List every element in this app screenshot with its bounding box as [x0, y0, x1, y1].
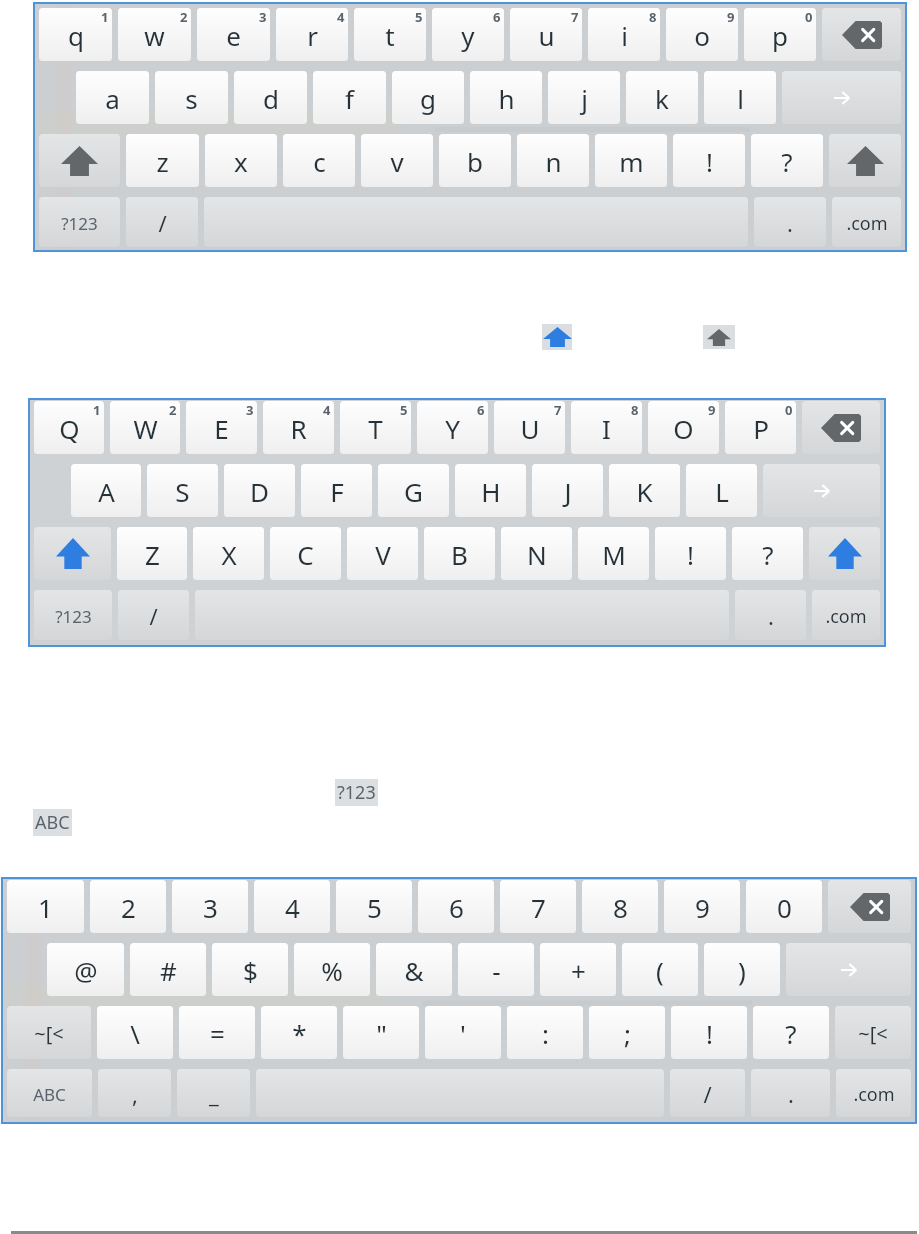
- button[interactable]: W: [110, 401, 180, 454]
- button[interactable]: m: [595, 134, 667, 187]
- button[interactable]: O: [648, 401, 719, 454]
- button[interactable]: E: [186, 401, 257, 454]
- button[interactable]: #: [130, 943, 206, 996]
- button[interactable]: h: [470, 71, 542, 124]
- button[interactable]: M: [578, 527, 649, 580]
- button[interactable]: T: [340, 401, 411, 454]
- button[interactable]: C: [270, 527, 341, 580]
- button[interactable]: D: [224, 464, 295, 517]
- button[interactable]: ~[<: [835, 1006, 911, 1059]
- button[interactable]: R: [263, 401, 334, 454]
- button[interactable]: l: [704, 71, 776, 124]
- button[interactable]: ?123: [39, 197, 120, 247]
- button[interactable]: .: [754, 197, 826, 247]
- button[interactable]: -: [458, 943, 534, 996]
- button[interactable]: ": [343, 1006, 419, 1059]
- button[interactable]: U: [494, 401, 565, 454]
- button[interactable]: y: [432, 8, 504, 61]
- button[interactable]: V: [347, 527, 418, 580]
- button[interactable]: ?: [751, 134, 823, 187]
- button[interactable]: x: [205, 134, 277, 187]
- button[interactable]: e: [197, 8, 270, 61]
- button[interactable]: ): [704, 943, 780, 996]
- button[interactable]: L: [686, 464, 757, 517]
- button[interactable]: .com: [836, 1069, 911, 1117]
- button[interactable]: Shift enabled: [542, 324, 572, 350]
- button[interactable]: 5: [336, 880, 412, 933]
- button[interactable]: K: [609, 464, 680, 517]
- button[interactable]: ABC: [7, 1069, 92, 1117]
- button[interactable]: j: [548, 71, 620, 124]
- button[interactable]: 6: [418, 880, 494, 933]
- button[interactable]: r: [276, 8, 348, 61]
- button[interactable]: 0: [746, 880, 822, 933]
- button[interactable]: d: [234, 71, 307, 124]
- button[interactable]: 1: [7, 880, 84, 933]
- button[interactable]: ?: [753, 1006, 829, 1059]
- button[interactable]: Shift: [39, 134, 120, 187]
- button[interactable]: G: [378, 464, 449, 517]
- button[interactable]: /: [670, 1069, 745, 1117]
- button[interactable]: Enter: [782, 71, 901, 124]
- button[interactable]: *: [261, 1006, 337, 1059]
- button[interactable]: ?: [732, 527, 803, 580]
- button[interactable]: 2: [90, 880, 166, 933]
- button[interactable]: Backspace: [822, 8, 901, 61]
- button[interactable]: 7: [500, 880, 576, 933]
- button[interactable]: @: [47, 943, 124, 996]
- button[interactable]: ?123: [34, 590, 112, 640]
- button[interactable]: Space: [256, 1069, 664, 1117]
- button[interactable]: Space: [204, 197, 748, 247]
- button[interactable]: !: [655, 527, 726, 580]
- button[interactable]: J: [532, 464, 603, 517]
- button[interactable]: H: [455, 464, 526, 517]
- button[interactable]: b: [439, 134, 511, 187]
- button[interactable]: s: [155, 71, 228, 124]
- button[interactable]: .: [735, 590, 806, 640]
- button[interactable]: f: [313, 71, 386, 124]
- button[interactable]: .com: [832, 197, 901, 247]
- button[interactable]: Shift: [34, 527, 111, 580]
- button[interactable]: =: [179, 1006, 255, 1059]
- button[interactable]: S: [147, 464, 218, 517]
- button[interactable]: Shift: [829, 134, 901, 187]
- button[interactable]: ,: [98, 1069, 171, 1117]
- button[interactable]: 4: [254, 880, 330, 933]
- button[interactable]: Y: [417, 401, 488, 454]
- button[interactable]: k: [626, 71, 698, 124]
- button[interactable]: /: [126, 197, 198, 247]
- button[interactable]: $: [212, 943, 288, 996]
- button[interactable]: A: [71, 464, 141, 517]
- button[interactable]: n: [517, 134, 589, 187]
- button[interactable]: 8: [582, 880, 658, 933]
- button[interactable]: Z: [117, 527, 187, 580]
- button[interactable]: ?123: [337, 780, 376, 805]
- button[interactable]: I: [571, 401, 642, 454]
- button[interactable]: 9: [664, 880, 740, 933]
- button[interactable]: F: [301, 464, 372, 517]
- button[interactable]: /: [118, 590, 189, 640]
- button[interactable]: !: [671, 1006, 747, 1059]
- button[interactable]: ~[<: [7, 1006, 91, 1059]
- button[interactable]: Shift: [703, 325, 735, 349]
- button[interactable]: &: [376, 943, 452, 996]
- button[interactable]: B: [424, 527, 495, 580]
- button[interactable]: Backspace: [828, 880, 911, 933]
- button[interactable]: o: [666, 8, 738, 61]
- button[interactable]: c: [283, 134, 355, 187]
- button[interactable]: Backspace: [802, 401, 880, 454]
- button[interactable]: ;: [589, 1006, 665, 1059]
- button[interactable]: 3: [172, 880, 248, 933]
- button[interactable]: P: [725, 401, 796, 454]
- button[interactable]: X: [193, 527, 264, 580]
- button[interactable]: t: [354, 8, 426, 61]
- button[interactable]: N: [501, 527, 572, 580]
- button[interactable]: \: [97, 1006, 173, 1059]
- button[interactable]: %: [294, 943, 370, 996]
- button[interactable]: Q: [34, 401, 104, 454]
- button[interactable]: :: [507, 1006, 583, 1059]
- button[interactable]: v: [361, 134, 433, 187]
- button[interactable]: _: [177, 1069, 250, 1117]
- button[interactable]: Enter: [763, 464, 880, 517]
- button[interactable]: .com: [812, 590, 880, 640]
